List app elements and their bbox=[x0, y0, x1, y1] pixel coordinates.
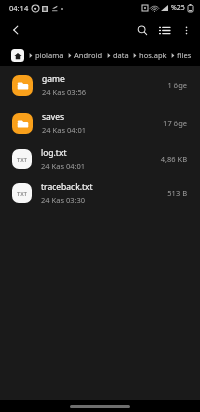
staticText: 17 öge bbox=[163, 118, 187, 128]
staticText: TXT bbox=[17, 156, 27, 163]
staticText: 513 B bbox=[167, 188, 187, 198]
staticText: 24 Kas 03:30 bbox=[41, 195, 86, 205]
staticText: log.txt bbox=[41, 147, 67, 159]
staticText: traceback.txt bbox=[41, 181, 93, 193]
staticText: hos.apk bbox=[139, 50, 167, 60]
staticText: Android bbox=[74, 50, 103, 60]
staticText: 24 Kas 04:01 bbox=[41, 161, 86, 171]
button[interactable]: data bbox=[106, 50, 132, 60]
staticText: 1 öge bbox=[167, 80, 187, 90]
button[interactable]: piolama bbox=[28, 50, 67, 60]
button[interactable]: files bbox=[170, 50, 195, 60]
button[interactable]: Search bbox=[131, 19, 153, 41]
button[interactable]: More options bbox=[175, 19, 197, 41]
button[interactable]: Internal storage bbox=[11, 49, 24, 62]
button[interactable]: Android bbox=[67, 50, 106, 60]
staticText: saves bbox=[42, 111, 65, 123]
button[interactable]: saves bbox=[0, 104, 200, 142]
staticText: TXT bbox=[17, 190, 27, 197]
staticText: files bbox=[177, 50, 192, 60]
button[interactable]: hos.apk bbox=[132, 50, 170, 60]
staticText: 24 Kas 03:56 bbox=[42, 87, 87, 97]
button[interactable]: TXT bbox=[0, 176, 200, 210]
button[interactable]: game bbox=[0, 66, 200, 104]
button[interactable]: Back bbox=[4, 18, 28, 42]
button[interactable]: List view bbox=[153, 19, 175, 41]
button[interactable]: TXT bbox=[0, 142, 200, 176]
staticText: 04:14 bbox=[9, 3, 29, 13]
staticText: %25 bbox=[171, 3, 185, 13]
staticText: piolama bbox=[35, 50, 64, 60]
staticText: data bbox=[113, 50, 129, 60]
staticText: game bbox=[42, 73, 65, 85]
staticText: 24 Kas 04:01 bbox=[42, 125, 87, 135]
staticText: 4,86 KB bbox=[160, 154, 187, 164]
